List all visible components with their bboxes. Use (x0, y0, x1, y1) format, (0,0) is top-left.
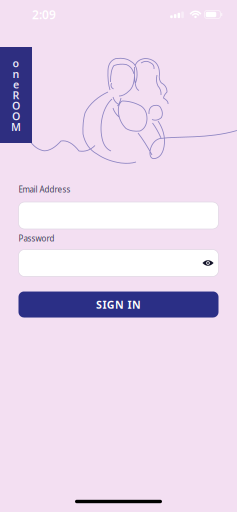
staticText: 2:09 (32, 6, 56, 22)
staticText: Password (18, 233, 54, 244)
staticText: M (11, 120, 21, 134)
staticText: Email Address (18, 184, 70, 195)
staticText: n (12, 67, 19, 81)
button[interactable]: SIGN IN (18, 291, 218, 317)
staticText: e (13, 77, 19, 91)
button[interactable]: Email Address (18, 202, 218, 229)
button[interactable]: Password (18, 249, 218, 276)
button[interactable]: Show password (200, 256, 216, 270)
staticText: R (12, 88, 19, 102)
staticText: O (12, 98, 20, 113)
staticText: o (12, 56, 19, 70)
staticText: SIGN IN (96, 297, 141, 312)
staticText: O (12, 109, 20, 123)
